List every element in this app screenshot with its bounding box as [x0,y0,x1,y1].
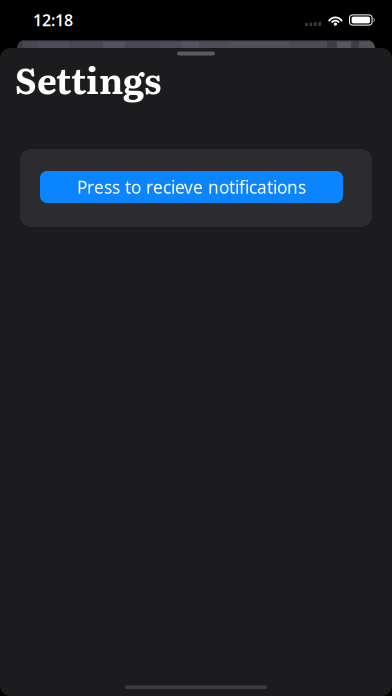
staticText: 12:18 [33,9,73,31]
button[interactable]: Press to recieve notifications [40,171,343,203]
staticText: Settings [15,52,161,105]
staticText: Press to recieve notifications [77,175,306,198]
